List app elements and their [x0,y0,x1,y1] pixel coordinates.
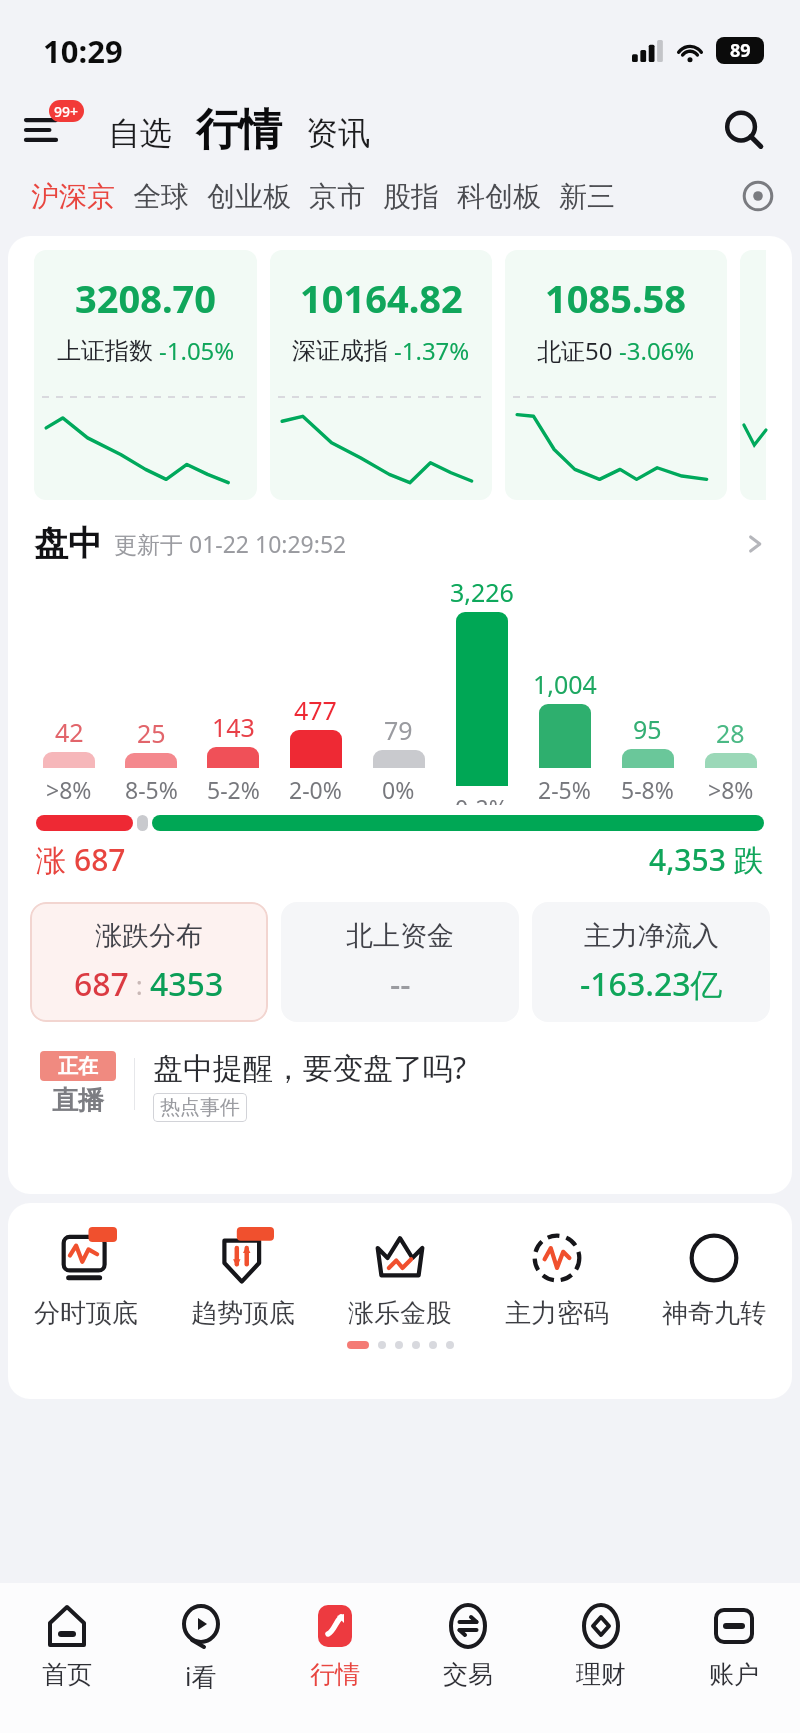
staticText: -- [390,962,411,1006]
button[interactable]: 分时顶底 [8,1227,164,1335]
staticText: 涨乐金股 [348,1297,452,1330]
button[interactable]: 新三 [550,171,624,222]
staticText: 上证指数 [57,336,153,366]
staticText: 正在 [58,1054,98,1079]
staticText: 涨跌分布 [95,919,203,953]
button[interactable]: 资讯 [302,109,374,157]
staticText: 深证成指 [292,336,388,366]
staticText: 股指 [383,179,439,214]
staticText: 热点事件 [160,1095,240,1120]
staticText: -1.05% [159,334,235,367]
staticText: 4,353 [649,839,726,880]
button[interactable]: Settings [734,172,782,220]
staticText: 资讯 [306,113,370,153]
button[interactable]: 涨跌分布 [30,902,268,1022]
staticText: -1.37% [394,334,470,367]
staticText: 全球 [133,179,189,214]
button[interactable]: 主力密码 [478,1227,635,1335]
staticText: 2-0% [289,774,342,805]
button[interactable]: 正在 [30,1044,770,1124]
staticText: 10164.82 [300,272,463,324]
button[interactable]: 账户 [667,1599,800,1690]
staticText: 主力净流入 [584,919,719,953]
staticText: 89 [730,38,751,63]
staticText: 99+ [54,102,79,121]
staticText: 0-2% [455,792,508,805]
button[interactable]: 主力净流入 [532,902,770,1022]
staticText: 新三 [559,179,615,214]
button[interactable]: 行情 [192,103,286,157]
staticText: 1085.58 [545,272,687,324]
staticText: 北证50 [537,334,613,367]
staticText: 北上资金 [346,919,454,953]
staticText: 4353 [150,962,224,1006]
button[interactable]: 盘中 [8,518,792,569]
button[interactable]: 行情 [268,1599,401,1690]
staticText: 创业板 [207,179,291,214]
staticText: 涨 [36,839,74,880]
staticText: 95 [633,712,662,746]
staticText: >8% [708,774,754,805]
staticText: 25 [137,716,166,750]
staticText: 分时顶底 [34,1297,138,1330]
button[interactable]: 沪深京 [22,171,124,222]
button[interactable]: 自选 [104,109,176,157]
staticText: 143 [212,710,255,744]
staticText: 1,004 [533,667,597,701]
button[interactable]: 京市 [300,171,374,222]
staticText: 行情 [310,1659,360,1690]
staticText: >8% [46,774,92,805]
staticText: 京市 [309,179,365,214]
staticText: 687 [74,839,126,880]
staticText: 首页 [42,1659,92,1690]
staticText: 更新于 01-22 10:29:52 [114,528,347,559]
button[interactable]: 10164.82 [270,250,492,500]
staticText: 趋势顶底 [191,1297,295,1330]
staticText: 直播 [52,1084,104,1117]
staticText: 行情 [196,103,282,157]
staticText: 3,226 [450,575,514,609]
staticText: 理财 [576,1659,626,1690]
staticText: : [129,967,150,1002]
staticText: 神奇九转 [662,1297,766,1330]
staticText: 42 [55,715,84,749]
button[interactable]: 创业板 [198,171,300,222]
staticText: 盘中提醒，要变盘了吗? [153,1047,467,1088]
button[interactable]: 理财 [534,1599,667,1690]
button[interactable]: 3208.70 [34,250,257,500]
button[interactable]: 1085.58 [505,250,727,500]
staticText: 8-5% [125,774,178,805]
staticText: -3.06% [619,334,695,367]
button[interactable]: 北上资金 [281,902,519,1022]
staticText: 科创板 [457,179,541,214]
staticText: 自选 [108,113,172,153]
staticText: 28 [716,716,745,750]
button[interactable]: 神奇九转 [635,1227,792,1335]
staticText: 账户 [709,1659,759,1690]
staticText: 沪深京 [31,179,115,214]
staticText: 10:29 [43,30,123,72]
button[interactable]: 交易 [401,1599,534,1690]
staticText: 交易 [443,1659,493,1690]
staticText: 0% [382,774,415,805]
staticText: 5-8% [621,774,674,805]
staticText: i看 [185,1659,217,1693]
staticText: 477 [294,693,337,727]
staticText: 主力密码 [505,1297,609,1330]
button[interactable]: 首页 [0,1599,134,1690]
staticText: 687 [74,962,129,1006]
button[interactable]: Menu [20,102,84,158]
staticText: 3208.70 [75,272,217,324]
button[interactable]: 趋势顶底 [164,1227,321,1335]
button[interactable]: 科创板 [448,171,550,222]
staticText: 5-2% [207,774,260,805]
button[interactable]: i看 [134,1599,268,1693]
button[interactable]: Search [716,102,772,158]
staticText: 2-5% [538,774,591,805]
button[interactable]: 股指 [374,171,448,222]
staticText: 跌 [726,839,764,880]
staticText: -163.23亿 [580,962,723,1006]
staticText: 盘中 [34,522,102,565]
button[interactable]: 全球 [124,171,198,222]
button[interactable]: 涨乐金股 [321,1227,478,1335]
